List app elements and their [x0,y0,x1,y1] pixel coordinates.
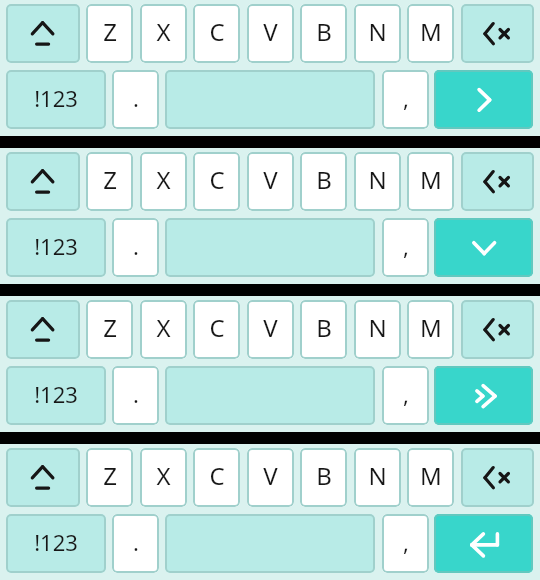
button[interactable]: M [407,448,454,507]
staticText: . [133,83,139,113]
button[interactable]: M [407,4,454,63]
button[interactable]: !123 [6,70,106,129]
button[interactable]: V [247,4,294,63]
staticText: M [420,15,442,48]
button[interactable]: , [382,366,429,425]
staticText: C [209,459,225,492]
staticText: B [316,163,332,196]
staticText: !123 [34,527,78,557]
staticText: Z [103,15,117,48]
staticText: N [368,311,387,344]
button[interactable]: B [300,448,347,507]
staticText: V [263,163,278,196]
button[interactable]: Space [165,514,375,573]
staticText: . [133,231,139,261]
button[interactable]: , [382,514,429,573]
button[interactable]: C [193,448,240,507]
staticText: , [403,231,409,261]
staticText: V [263,459,278,492]
button[interactable]: B [300,4,347,63]
button[interactable]: Backspace [461,4,534,63]
button[interactable]: Go [434,366,533,425]
staticText: N [368,459,387,492]
staticText: !123 [34,231,78,261]
button[interactable]: Z [86,300,133,359]
staticText: Z [103,311,117,344]
staticText: X [156,459,171,492]
button[interactable]: C [193,4,240,63]
staticText: N [368,15,387,48]
button[interactable]: . [112,218,159,277]
button[interactable]: Z [86,448,133,507]
button[interactable]: C [193,300,240,359]
staticText: M [420,163,442,196]
button[interactable]: X [140,4,187,63]
button[interactable]: N [354,152,401,211]
button[interactable]: B [300,300,347,359]
button[interactable]: Backspace [461,152,534,211]
button[interactable]: . [112,366,159,425]
staticText: !123 [34,83,78,113]
button[interactable]: Backspace [461,300,534,359]
button[interactable]: X [140,300,187,359]
staticText: X [156,311,171,344]
staticText: X [156,163,171,196]
button[interactable]: . [112,514,159,573]
staticText: M [420,459,442,492]
button[interactable]: Space [165,70,375,129]
button[interactable]: Enter [434,514,533,573]
button[interactable]: Shift [6,300,80,359]
button[interactable]: !123 [6,366,106,425]
staticText: C [209,163,225,196]
staticText: C [209,15,225,48]
button[interactable]: !123 [6,514,106,573]
button[interactable]: X [140,448,187,507]
staticText: B [316,311,332,344]
button[interactable]: M [407,152,454,211]
staticText: Z [103,459,117,492]
button[interactable]: !123 [6,218,106,277]
button[interactable]: M [407,300,454,359]
button[interactable]: Space [165,366,375,425]
staticText: . [133,379,139,409]
staticText: N [368,163,387,196]
staticText: X [156,15,171,48]
button[interactable]: Shift [6,152,80,211]
staticText: B [316,459,332,492]
button[interactable]: B [300,152,347,211]
staticText: V [263,311,278,344]
staticText: V [263,15,278,48]
button[interactable]: Done [434,218,533,277]
button[interactable]: . [112,70,159,129]
button[interactable]: Shift [6,448,80,507]
button[interactable]: Next [434,70,533,129]
staticText: M [420,311,442,344]
button[interactable]: X [140,152,187,211]
button[interactable]: , [382,70,429,129]
button[interactable]: Backspace [461,448,534,507]
button[interactable]: V [247,300,294,359]
button[interactable]: V [247,152,294,211]
staticText: C [209,311,225,344]
button[interactable]: Space [165,218,375,277]
staticText: , [403,379,409,409]
staticText: Z [103,163,117,196]
button[interactable]: N [354,300,401,359]
button[interactable]: C [193,152,240,211]
button[interactable]: V [247,448,294,507]
staticText: !123 [34,379,78,409]
button[interactable]: Shift [6,4,80,63]
button[interactable]: Z [86,152,133,211]
button[interactable]: , [382,218,429,277]
button[interactable]: N [354,4,401,63]
staticText: . [133,527,139,557]
staticText: B [316,15,332,48]
button[interactable]: N [354,448,401,507]
staticText: , [403,83,409,113]
button[interactable]: Z [86,4,133,63]
staticText: , [403,527,409,557]
